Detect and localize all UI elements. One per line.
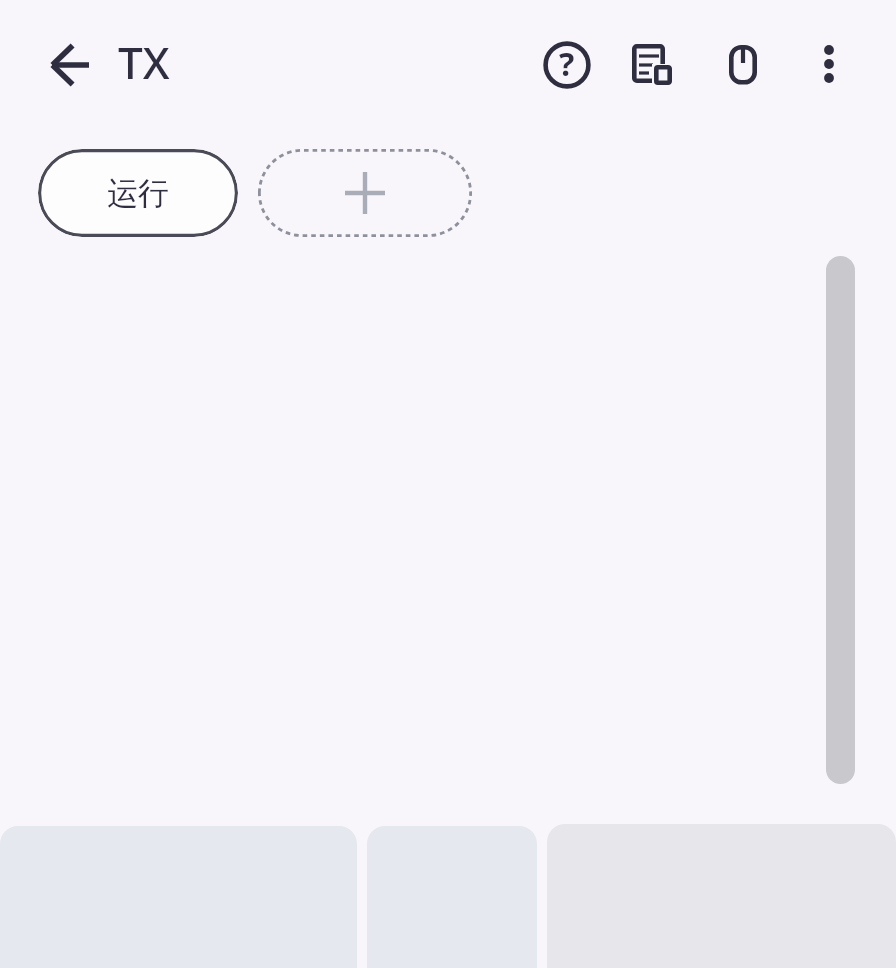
button[interactable]: Back <box>40 35 100 95</box>
button[interactable]: Logs <box>621 33 681 93</box>
button[interactable]: More options <box>799 35 859 95</box>
button[interactable]: Add <box>258 149 472 237</box>
staticText: ? <box>559 42 575 86</box>
button[interactable]: Help <box>537 35 597 95</box>
button[interactable]: Mouse <box>712 33 772 93</box>
staticText: TX <box>118 32 170 92</box>
button[interactable]: 运行 <box>38 149 238 237</box>
staticText: 运行 <box>107 174 169 213</box>
